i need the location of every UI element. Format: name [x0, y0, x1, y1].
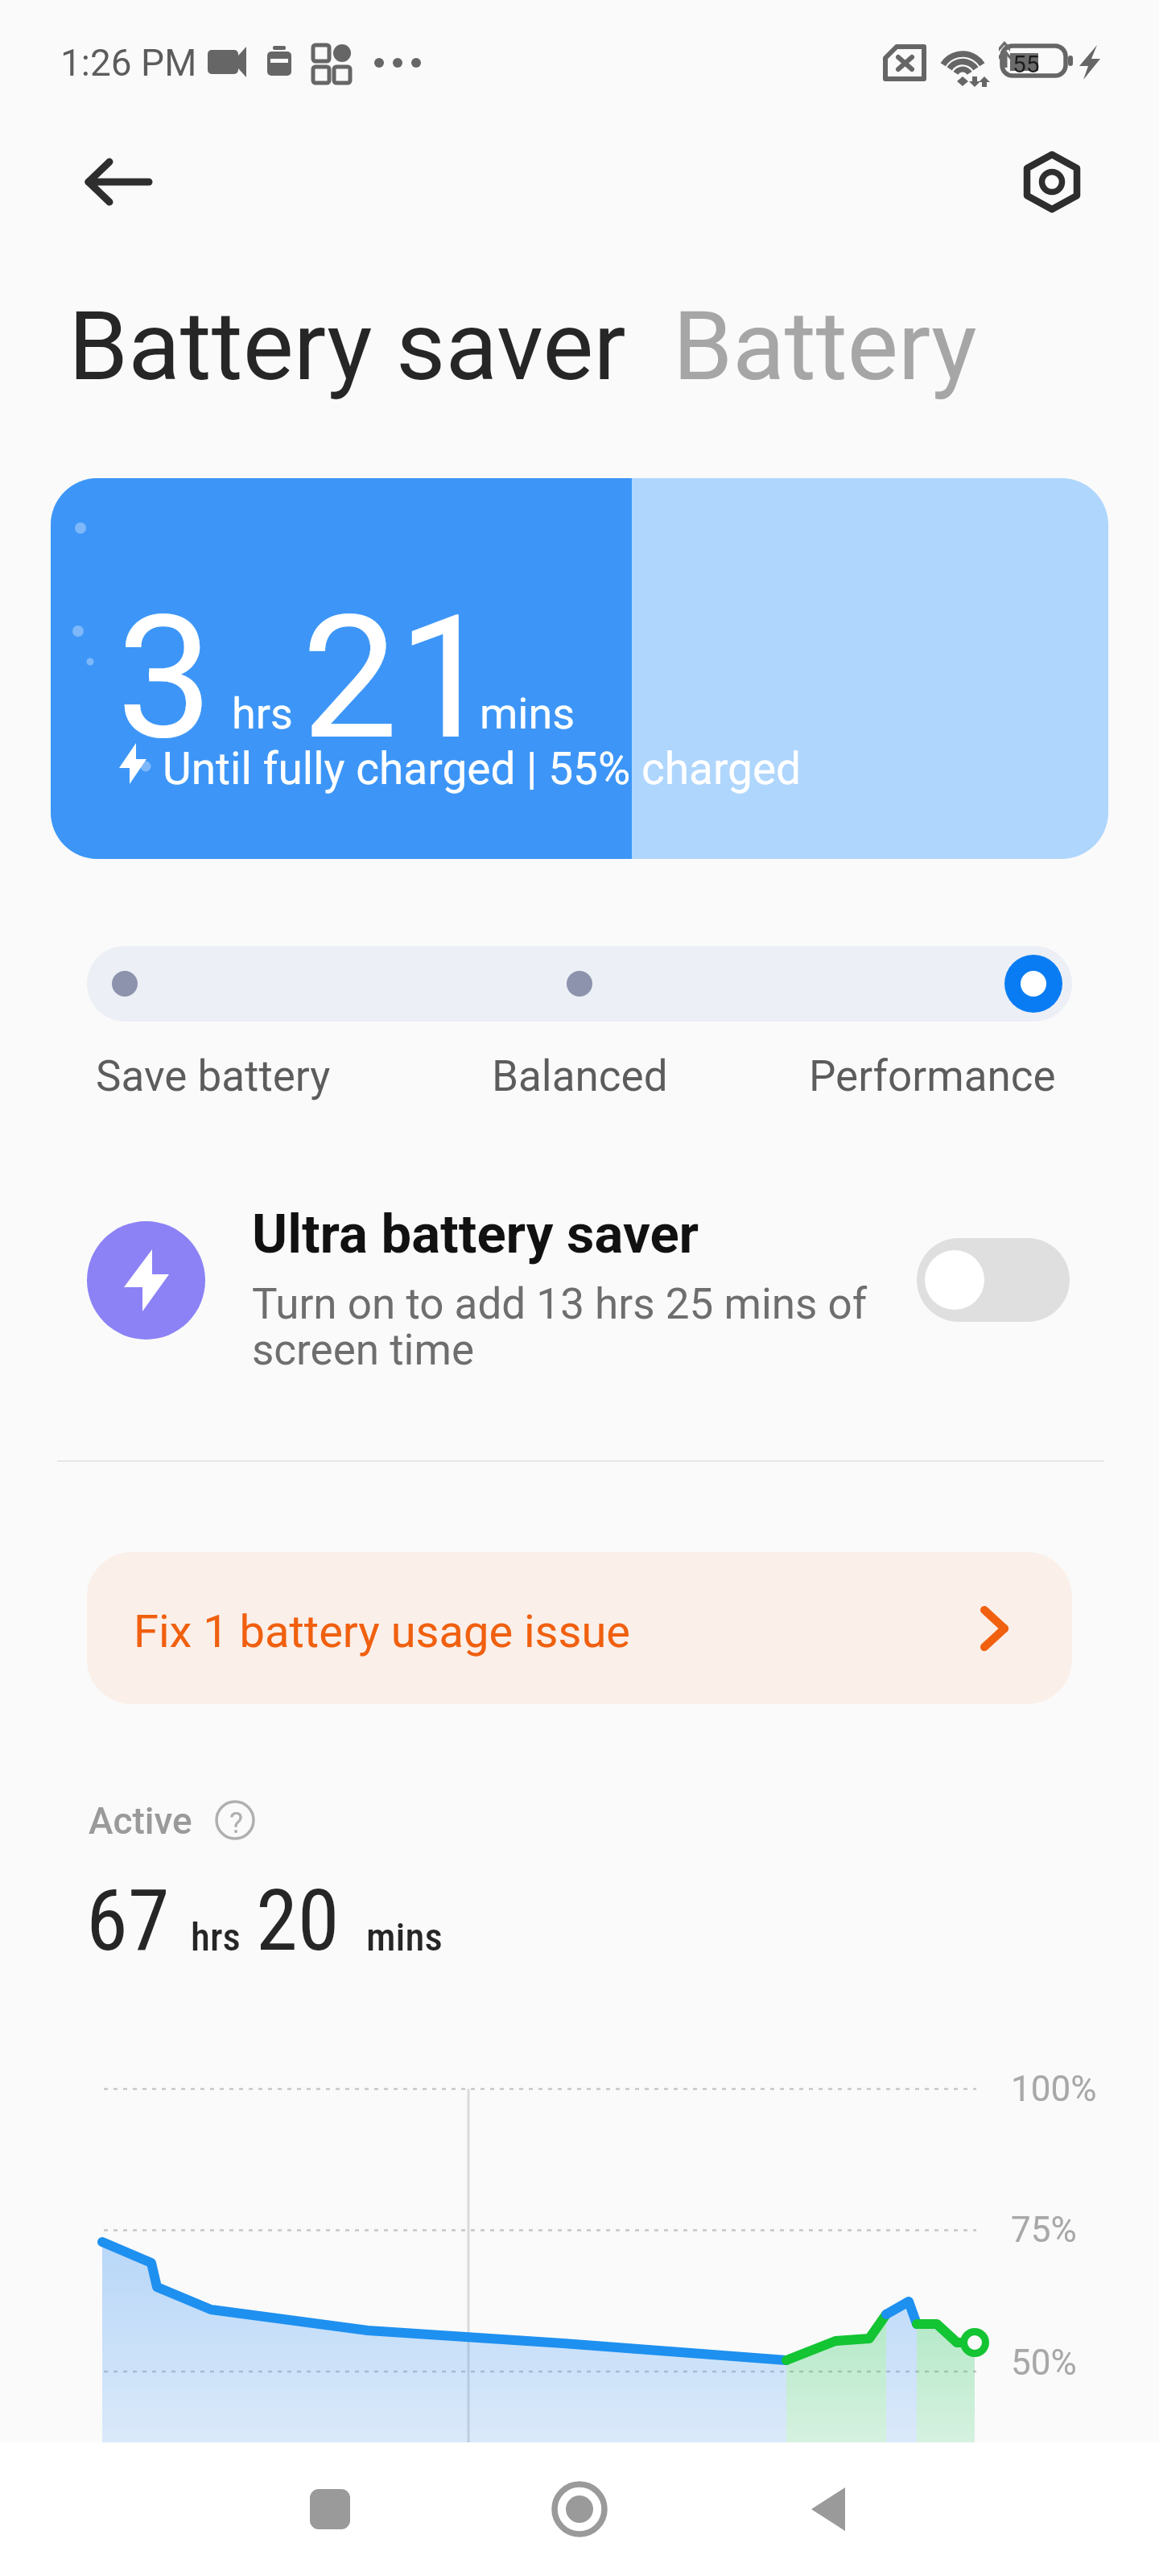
staticText: 67: [86, 1872, 170, 1971]
button[interactable]: [415, 946, 744, 1022]
button[interactable]: Settings: [1004, 134, 1100, 230]
button[interactable]: Balanced: [492, 1051, 668, 1101]
staticText: mins: [480, 688, 575, 739]
button[interactable]: [51, 1191, 1108, 1368]
staticText: 3: [117, 578, 213, 778]
button[interactable]: 3: [51, 478, 1108, 859]
button[interactable]: Help: [216, 1801, 254, 1839]
staticText: 1:26 PM: [60, 41, 197, 85]
staticText: Fix 1 battery usage issue: [134, 1605, 630, 1658]
staticText: 20: [256, 1872, 340, 1971]
button[interactable]: Save battery: [96, 1051, 331, 1101]
staticText: 50%: [1011, 2342, 1077, 2384]
button[interactable]: Fix 1 battery usage issue: [87, 1552, 1072, 1704]
staticText: 75%: [1011, 2209, 1077, 2251]
button[interactable]: Performance: [809, 1051, 1056, 1101]
button[interactable]: Recent apps: [258, 2442, 402, 2576]
staticText: hrs: [232, 688, 293, 739]
button[interactable]: Home: [507, 2442, 652, 2576]
button[interactable]: [744, 946, 1072, 1022]
staticText: Until fully charged | 55% charged: [163, 743, 802, 795]
staticText: mins: [366, 1914, 443, 1960]
button[interactable]: [87, 946, 415, 1022]
staticText: Active: [89, 1799, 192, 1843]
staticText: hrs: [191, 1914, 241, 1960]
button[interactable]: Ultra battery saver toggle: [917, 1238, 1070, 1322]
staticText: ?: [229, 1806, 244, 1840]
button[interactable]: Back: [756, 2442, 901, 2576]
staticText: Ultra battery saver: [252, 1203, 699, 1266]
staticText: 100%: [1011, 2068, 1097, 2110]
button[interactable]: Battery saver: [68, 291, 626, 402]
button[interactable]: Back: [63, 134, 159, 230]
staticText: 55: [1013, 50, 1040, 78]
staticText: 21: [302, 578, 494, 778]
button[interactable]: Battery: [673, 291, 977, 402]
staticText: Turn on to add 13 hrs 25 mins of screen …: [252, 1279, 868, 1375]
